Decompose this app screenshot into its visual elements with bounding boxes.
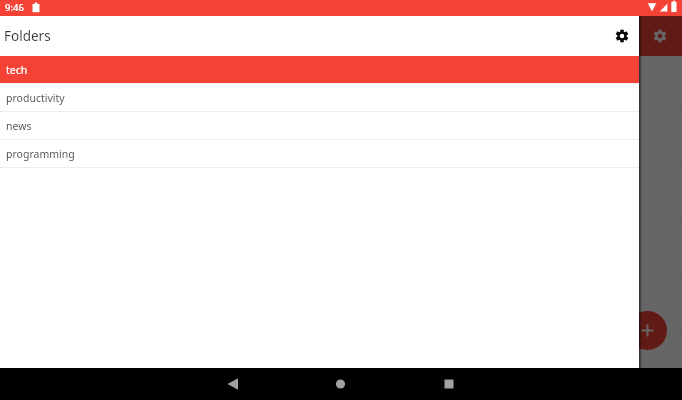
staticText: news — [6, 119, 32, 133]
button[interactable]: Recent apps — [428, 368, 470, 400]
button[interactable]: tech — [0, 56, 639, 84]
button[interactable] — [0, 112, 682, 168]
button[interactable] — [0, 224, 682, 280]
button[interactable] — [0, 168, 682, 224]
button[interactable]: news — [0, 112, 639, 140]
staticText: programming — [6, 147, 75, 161]
button[interactable] — [0, 280, 682, 336]
button[interactable]: Home — [320, 368, 362, 400]
staticText: Folders — [4, 27, 51, 45]
button[interactable]: Settings — [611, 25, 633, 47]
staticText: tech — [6, 63, 28, 77]
button[interactable]: programming — [0, 140, 639, 168]
button[interactable] — [0, 336, 682, 392]
staticText: productivity — [6, 91, 65, 105]
button[interactable]: Back — [212, 368, 254, 400]
button[interactable]: productivity — [0, 84, 639, 112]
button[interactable] — [0, 56, 682, 112]
button[interactable]: Add folder — [628, 311, 667, 350]
staticText: 9:46 — [5, 1, 24, 14]
button[interactable]: Settings — [649, 25, 671, 47]
